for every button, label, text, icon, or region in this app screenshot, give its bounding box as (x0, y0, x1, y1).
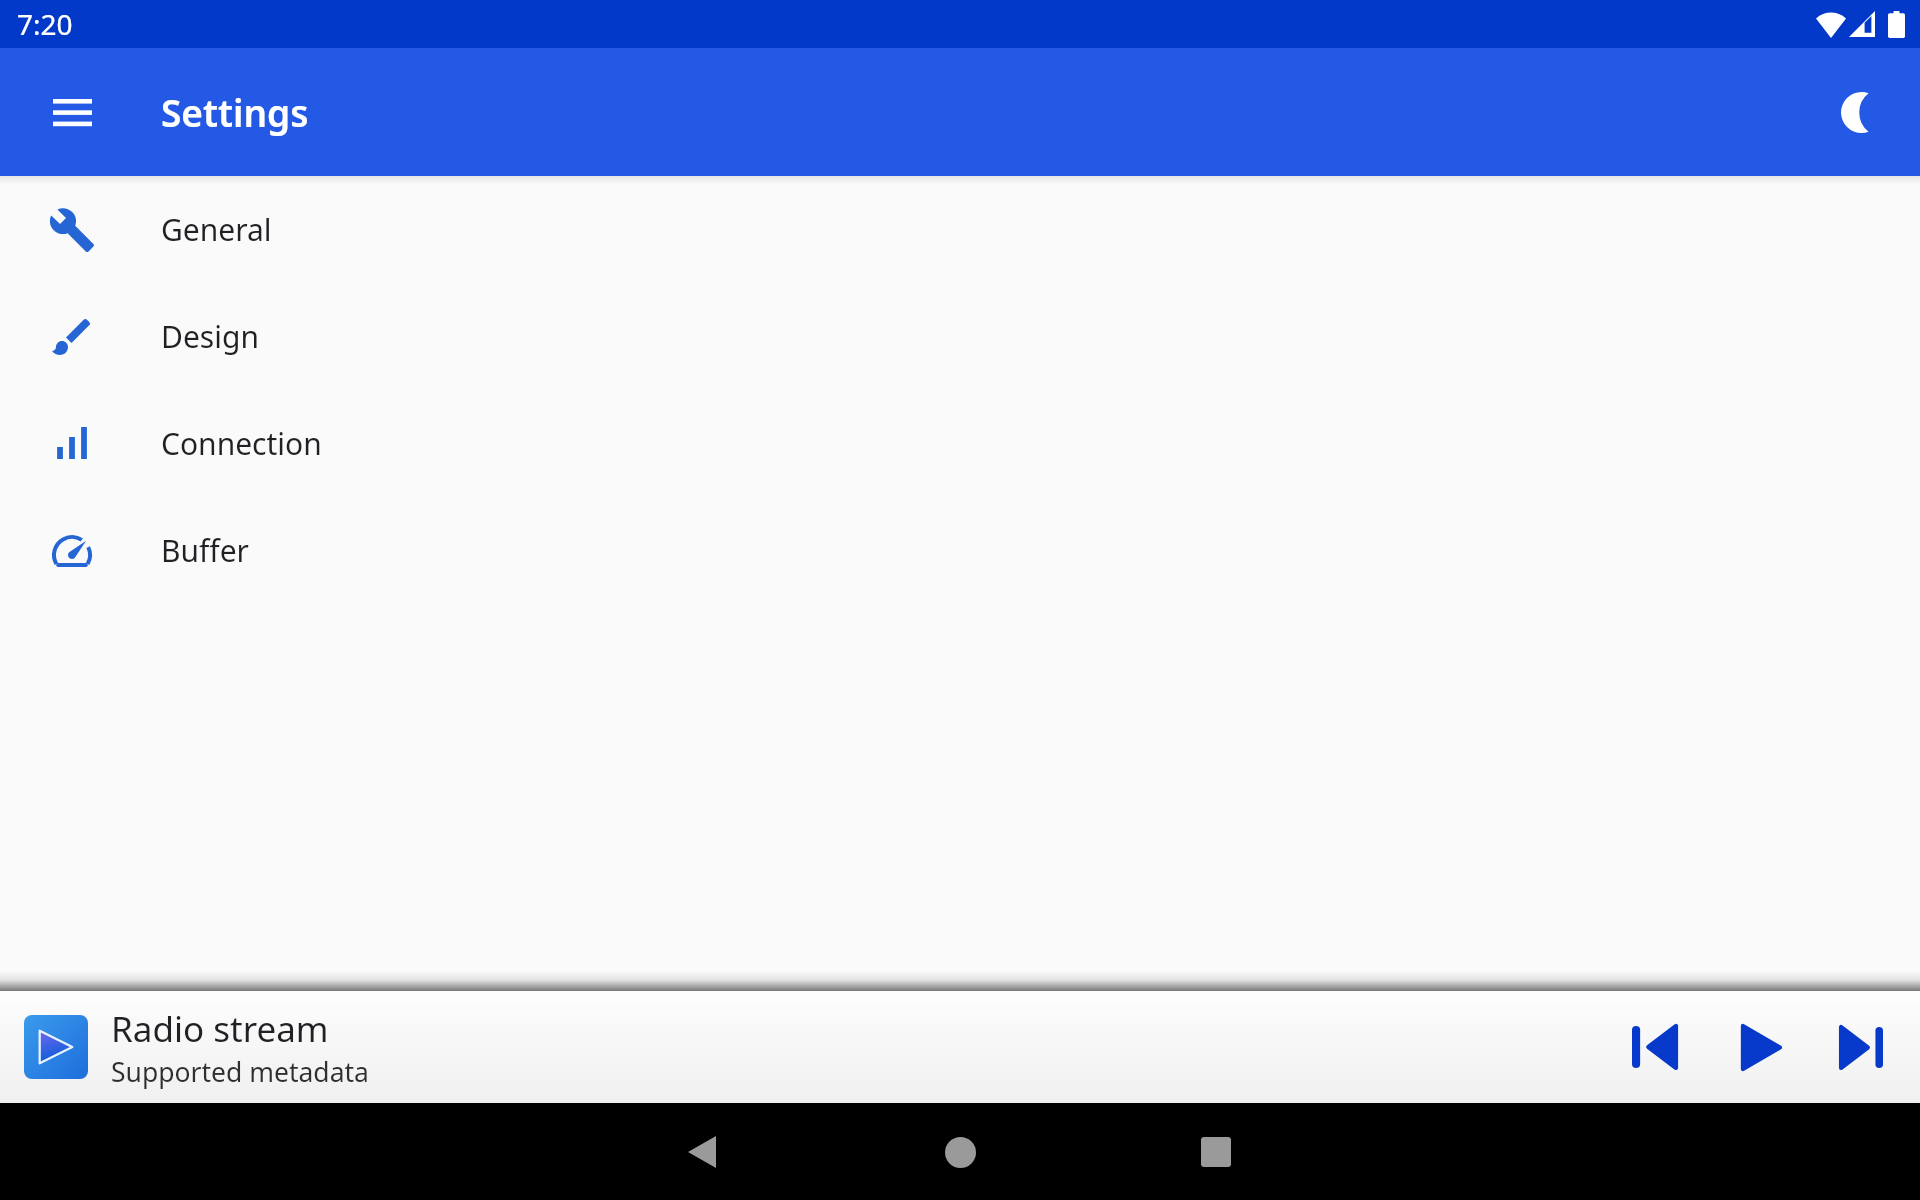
button[interactable]: Toggle night mode (1808, 64, 1904, 160)
button[interactable]: Next (1814, 999, 1910, 1095)
staticText: Design (161, 316, 259, 357)
button[interactable]: Play (1713, 999, 1809, 1095)
button[interactable]: Connection (0, 390, 1920, 497)
staticText: Buffer (161, 530, 249, 571)
staticText: General (161, 209, 272, 250)
button[interactable]: Now playing: Radio stream (0, 991, 393, 1103)
button[interactable]: Buffer (0, 497, 1920, 604)
staticText: Settings (161, 87, 309, 137)
button[interactable]: Back (660, 1110, 744, 1194)
button[interactable]: Recent apps (1174, 1110, 1258, 1194)
staticText: Connection (161, 423, 322, 464)
button[interactable]: Home (918, 1110, 1002, 1194)
button[interactable]: General (0, 176, 1920, 283)
button[interactable]: Design (0, 283, 1920, 390)
staticText: 7:20 (17, 5, 73, 43)
staticText: Supported metadata (111, 1054, 369, 1090)
button[interactable]: Previous (1606, 999, 1702, 1095)
staticText: Radio stream (111, 1005, 329, 1053)
button[interactable]: Open navigation menu (24, 64, 120, 160)
